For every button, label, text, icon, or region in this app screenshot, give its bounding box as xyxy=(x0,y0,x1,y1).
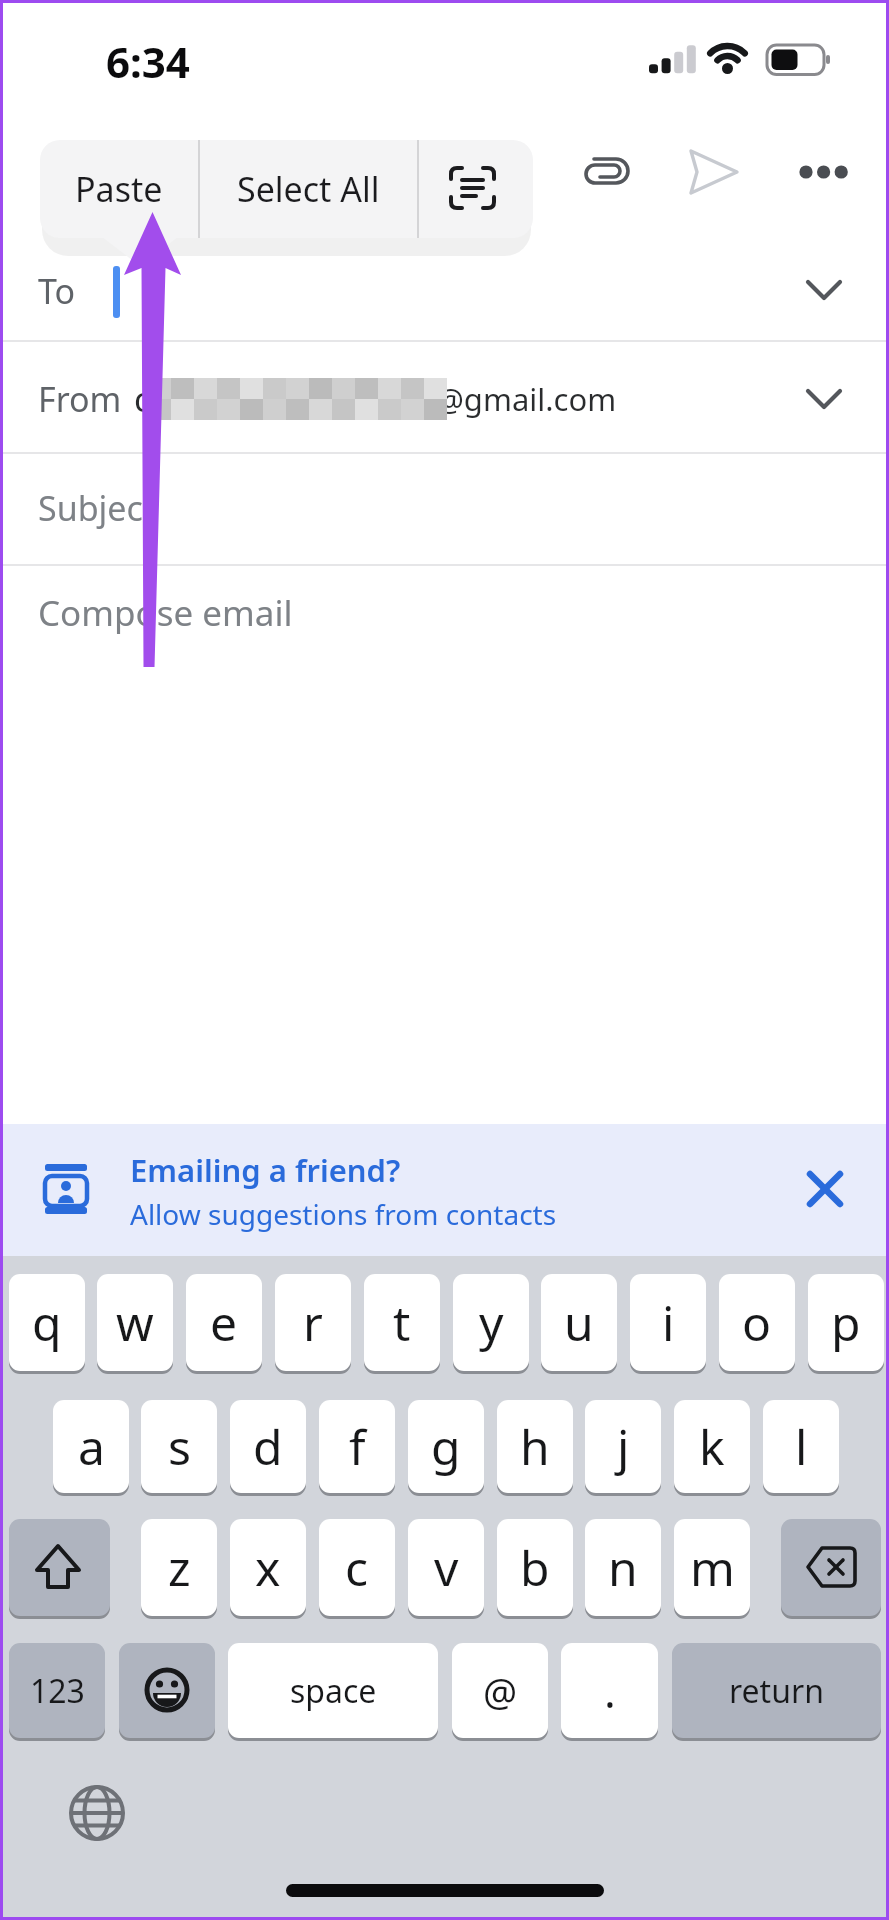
staticText: u xyxy=(564,1290,594,1355)
staticText: Allow suggestions from contacts xyxy=(130,1195,557,1233)
staticText: 6:34 xyxy=(106,33,190,90)
button[interactable] xyxy=(781,1519,881,1616)
button[interactable]: t xyxy=(364,1274,440,1371)
staticText: From xyxy=(38,376,122,422)
button[interactable]: p xyxy=(808,1274,884,1371)
staticText: p xyxy=(831,1290,861,1355)
button[interactable] xyxy=(686,146,744,198)
button[interactable]: c xyxy=(319,1519,395,1616)
button[interactable]: return xyxy=(672,1643,881,1738)
button[interactable]: a xyxy=(53,1400,129,1493)
staticText: q xyxy=(32,1290,62,1355)
staticText: return xyxy=(729,1669,824,1713)
staticText: k xyxy=(699,1414,725,1479)
staticText: Emailing a friend? xyxy=(130,1149,401,1191)
staticText: s xyxy=(168,1414,191,1479)
button[interactable]: l xyxy=(763,1400,839,1493)
button[interactable]: r xyxy=(275,1274,351,1371)
staticText: n xyxy=(608,1535,638,1600)
staticText: c xyxy=(134,376,151,422)
staticText: v xyxy=(434,1535,459,1600)
button[interactable]: space xyxy=(228,1643,438,1738)
staticText: o xyxy=(742,1290,772,1355)
button[interactable]: g xyxy=(408,1400,484,1493)
staticText: Paste xyxy=(75,166,163,212)
button[interactable]: . xyxy=(561,1643,658,1738)
button[interactable]: i xyxy=(630,1274,706,1371)
button[interactable]: b xyxy=(497,1519,573,1616)
staticText: m xyxy=(690,1535,735,1600)
button[interactable]: w xyxy=(97,1274,173,1371)
button[interactable]: z xyxy=(141,1519,217,1616)
button[interactable]: q xyxy=(9,1274,85,1371)
staticText: f xyxy=(349,1414,366,1479)
staticText: h xyxy=(520,1414,550,1479)
staticText: e xyxy=(210,1290,238,1355)
button[interactable] xyxy=(449,166,497,212)
staticText: z xyxy=(168,1535,191,1600)
button[interactable] xyxy=(68,1784,126,1842)
button[interactable] xyxy=(9,1519,110,1616)
button[interactable]: o xyxy=(719,1274,795,1371)
button[interactable] xyxy=(806,1170,844,1208)
button[interactable]: 123 xyxy=(9,1643,105,1738)
staticText: @gmail.com xyxy=(436,378,617,420)
button[interactable] xyxy=(119,1643,215,1738)
button[interactable]: d xyxy=(230,1400,306,1493)
button[interactable] xyxy=(798,164,850,180)
button[interactable]: v xyxy=(408,1519,484,1616)
button[interactable]: n xyxy=(585,1519,661,1616)
staticText: d xyxy=(253,1414,283,1479)
staticText: t xyxy=(393,1290,411,1355)
staticText: . xyxy=(604,1661,616,1721)
button[interactable]: m xyxy=(674,1519,750,1616)
staticText: Subject xyxy=(38,485,156,531)
button[interactable]: f xyxy=(319,1400,395,1493)
staticText: j xyxy=(617,1414,630,1479)
staticText: x xyxy=(255,1535,281,1600)
staticText: b xyxy=(520,1535,550,1600)
staticText: c xyxy=(345,1535,369,1600)
button[interactable]: s xyxy=(141,1400,217,1493)
button[interactable] xyxy=(800,274,848,308)
staticText: 123 xyxy=(30,1669,85,1713)
button[interactable] xyxy=(800,383,848,417)
button[interactable]: x xyxy=(230,1519,306,1616)
staticText: g xyxy=(431,1414,461,1479)
staticText: space xyxy=(290,1669,377,1713)
button[interactable] xyxy=(580,150,634,194)
staticText: y xyxy=(479,1290,504,1355)
staticText: w xyxy=(116,1290,154,1355)
button[interactable]: h xyxy=(497,1400,573,1493)
button[interactable]: Select All xyxy=(200,140,417,238)
staticText: To xyxy=(38,268,76,314)
button[interactable]: j xyxy=(585,1400,661,1493)
staticText: r xyxy=(303,1290,323,1355)
staticText: Select All xyxy=(237,166,380,212)
button[interactable]: y xyxy=(453,1274,529,1371)
staticText: i xyxy=(662,1290,675,1355)
staticText: @ xyxy=(483,1665,518,1717)
staticText: Compose email xyxy=(38,589,293,637)
button[interactable]: @ xyxy=(452,1643,548,1738)
staticText: l xyxy=(795,1414,808,1479)
button[interactable]: e xyxy=(186,1274,262,1371)
staticText: a xyxy=(78,1414,105,1479)
button[interactable]: k xyxy=(674,1400,750,1493)
button[interactable]: Paste xyxy=(40,140,198,238)
button[interactable]: u xyxy=(541,1274,617,1371)
